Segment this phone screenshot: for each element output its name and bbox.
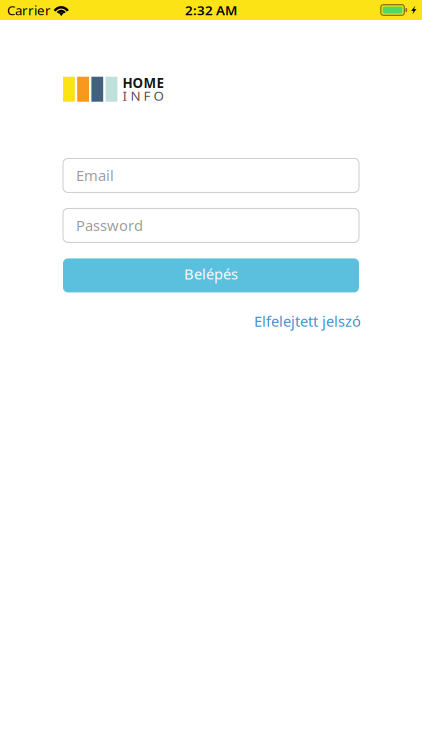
staticText: I N F O <box>122 87 163 104</box>
button[interactable]: Belépés <box>63 258 359 292</box>
staticText: Password <box>76 216 143 235</box>
staticText: Carrier <box>7 1 51 19</box>
staticText: Belépés <box>184 264 238 284</box>
button[interactable]: Elfelejtett jelszó <box>254 311 361 331</box>
staticText: HOME <box>122 74 163 92</box>
button[interactable]: Email <box>63 158 359 192</box>
staticText: 2:32 AM <box>185 1 237 19</box>
button[interactable]: Password <box>63 208 359 242</box>
staticText: Elfelejtett jelszó <box>254 311 361 331</box>
staticText: Email <box>76 166 114 185</box>
